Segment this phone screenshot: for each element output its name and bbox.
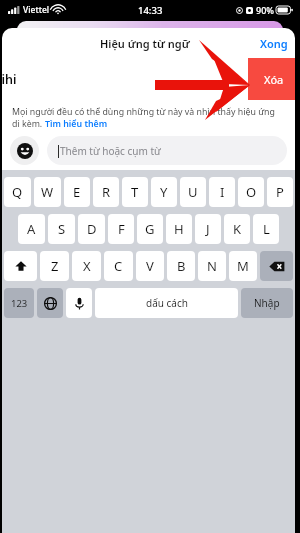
button[interactable]: C [104, 251, 133, 281]
staticText: H [174, 220, 184, 238]
button[interactable]: Y [151, 177, 177, 207]
staticText: 14:33 [138, 4, 163, 17]
button[interactable]: T [122, 177, 148, 207]
button[interactable]: J [195, 214, 221, 244]
button[interactable]: W [34, 177, 61, 207]
button[interactable]: H [166, 214, 192, 244]
staticText: Xong [260, 36, 288, 51]
staticText: I [220, 183, 225, 201]
button[interactable]: Q [4, 177, 31, 207]
button[interactable]: N [198, 251, 226, 281]
staticText: L [263, 220, 270, 238]
button[interactable]: Backspace [260, 251, 293, 281]
staticText: 123 [11, 297, 28, 310]
button[interactable]: B [167, 251, 195, 281]
staticText: T [131, 183, 139, 201]
staticText: K [233, 220, 242, 238]
button[interactable]: O [238, 177, 264, 207]
button[interactable]: U [180, 177, 206, 207]
button[interactable]: I [209, 177, 235, 207]
button[interactable]: F [108, 214, 134, 244]
staticText: F [118, 220, 125, 238]
staticText: S [58, 220, 66, 238]
button[interactable]: Change keyboard [37, 288, 63, 318]
staticText: dấu cách [146, 296, 188, 310]
staticText: O [246, 183, 257, 201]
button[interactable]: Emoji [10, 136, 39, 165]
button[interactable]: Xong [260, 36, 288, 51]
staticText: Thêm từ hoặc cụm từ [60, 144, 161, 158]
button[interactable]: M [229, 251, 257, 281]
button[interactable]: Z [40, 251, 69, 281]
staticText: R [102, 183, 111, 201]
button[interactable]: Tìm hiểu thêm [45, 118, 108, 130]
staticText: lihi [2, 71, 17, 88]
button[interactable]: Thêm từ hoặc cụm từ [47, 136, 287, 165]
button[interactable]: dấu cách [95, 288, 238, 318]
button[interactable]: Dictation [66, 288, 92, 318]
button[interactable]: G [137, 214, 163, 244]
staticText: Viettel [23, 4, 50, 16]
staticText: di kèm. [12, 118, 45, 130]
staticText: Nhập [254, 296, 280, 310]
button[interactable]: X [72, 251, 101, 281]
staticText: Z [51, 257, 59, 275]
staticText: P [276, 183, 284, 201]
staticText: C [114, 257, 123, 275]
staticText: A [27, 220, 36, 238]
staticText: J [206, 220, 210, 238]
button[interactable]: V [136, 251, 164, 281]
button[interactable]: S [48, 214, 75, 244]
staticText: Mọi người đều có thể dùng những từ này v… [12, 106, 275, 118]
button[interactable]: Shift [4, 251, 37, 281]
staticText: M [237, 257, 249, 275]
button[interactable]: D [78, 214, 105, 244]
staticText: D [87, 220, 97, 238]
staticText: V [146, 257, 154, 275]
staticText: Hiệu ứng từ ngữ [100, 36, 190, 51]
staticText: Q [12, 183, 23, 201]
staticText: N [207, 257, 217, 275]
staticText: B [177, 257, 186, 275]
button[interactable]: L [253, 214, 279, 244]
button[interactable]: Nhập [241, 288, 293, 318]
staticText: 90% [256, 4, 274, 16]
button[interactable]: 123 [4, 288, 34, 318]
button[interactable]: R [93, 177, 119, 207]
button[interactable]: P [267, 177, 293, 207]
button[interactable]: A [18, 214, 45, 244]
button[interactable]: Xóa [248, 58, 295, 100]
staticText: W [41, 183, 54, 201]
staticText: X [83, 257, 91, 275]
button[interactable]: K [224, 214, 250, 244]
staticText: Y [160, 183, 168, 201]
staticText: Xóa [264, 72, 284, 87]
staticText: G [145, 220, 155, 238]
button[interactable]: E [64, 177, 90, 207]
staticText: U [188, 183, 198, 201]
staticText: E [73, 183, 81, 201]
staticText: Tìm hiểu thêm [45, 118, 108, 130]
